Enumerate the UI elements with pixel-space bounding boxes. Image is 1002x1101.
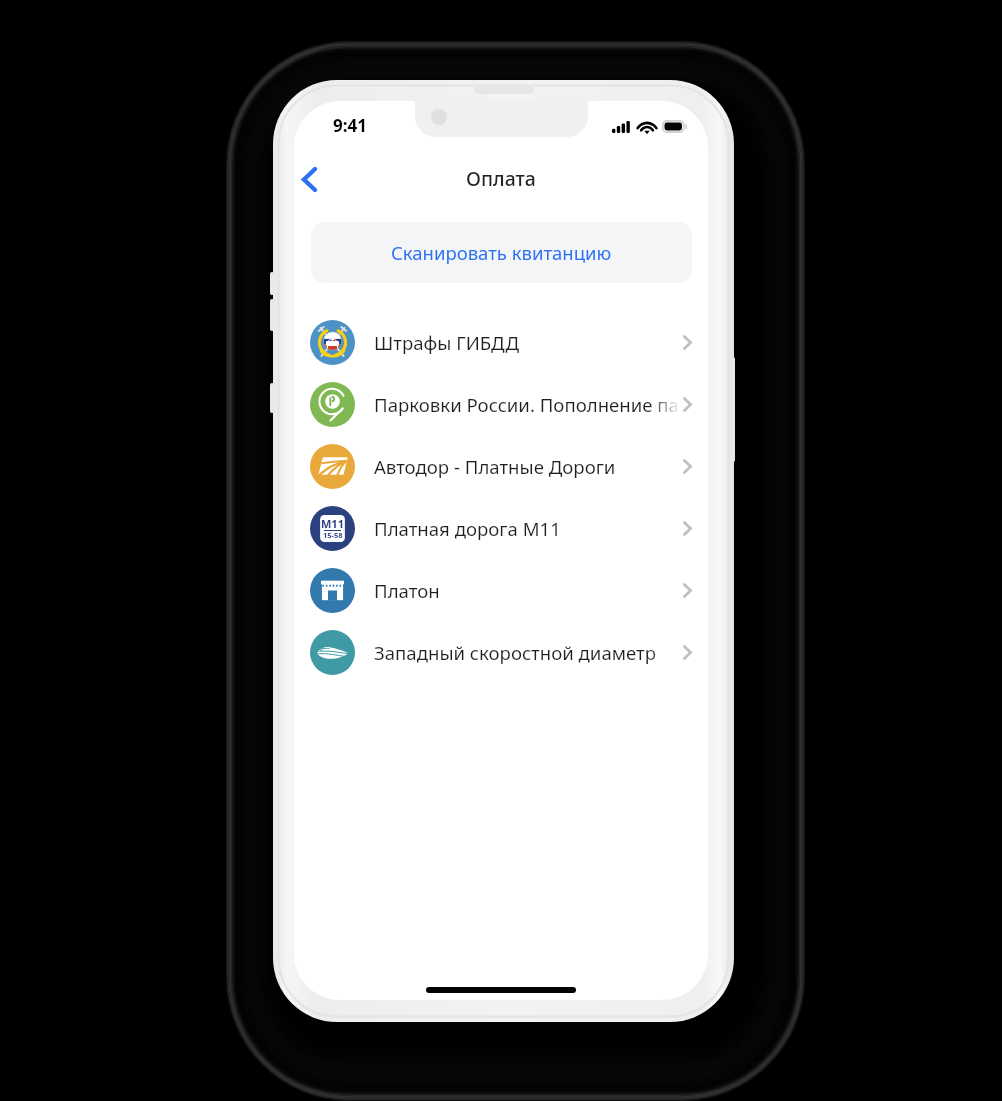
- button[interactable]: Автодор - Платные Дороги: [294, 435, 708, 497]
- staticText: 9:41: [333, 114, 367, 137]
- button[interactable]: Сканировать квитанцию: [311, 222, 692, 283]
- staticText: Парковки России. Пополнение парковочного…: [374, 392, 681, 417]
- staticText: Платон: [374, 578, 440, 603]
- staticText: Западный скоростной диаметр: [374, 640, 657, 665]
- button[interactable]: Западный скоростной диаметр: [294, 621, 708, 683]
- button[interactable]: Платон: [294, 559, 708, 621]
- button[interactable]: Парковки России. Пополнение парковочного…: [294, 373, 708, 435]
- staticText: Платная дорога М11: [374, 516, 561, 541]
- staticText: Сканировать квитанцию: [391, 240, 612, 265]
- button[interactable]: M11: [294, 497, 708, 559]
- button[interactable]: Штрафы ГИБДД: [294, 311, 708, 373]
- staticText: 15-58: [323, 530, 343, 540]
- staticText: M11: [321, 516, 344, 531]
- button[interactable]: Back: [294, 157, 331, 201]
- staticText: Оплата: [466, 165, 536, 192]
- staticText: Штрафы ГИБДД: [374, 330, 519, 355]
- staticText: Автодор - Платные Дороги: [374, 454, 616, 479]
